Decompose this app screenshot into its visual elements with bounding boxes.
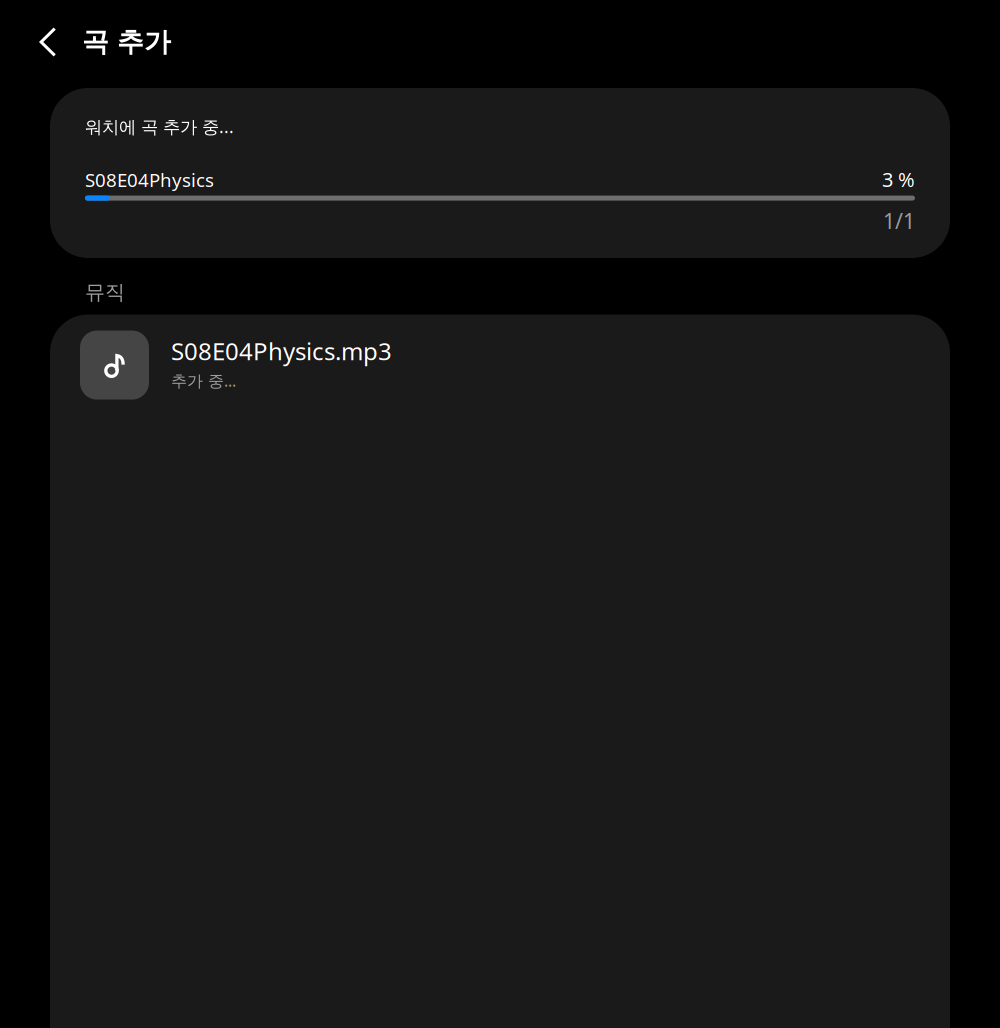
staticText: 곡 추가 (82, 26, 171, 58)
staticText: 워치에 곡 추가 중... (85, 115, 234, 138)
button[interactable]: Back (23, 14, 73, 74)
staticText: 1/1 (883, 207, 915, 235)
button[interactable]: S08E04Physics.mp3 (50, 315, 950, 416)
staticText: 추가 중... (171, 370, 236, 391)
staticText: S08E04Physics (85, 167, 214, 192)
staticText: 3 % (882, 166, 915, 193)
staticText: S08E04Physics.mp3 (171, 335, 392, 367)
staticText: 뮤직 (85, 280, 125, 305)
